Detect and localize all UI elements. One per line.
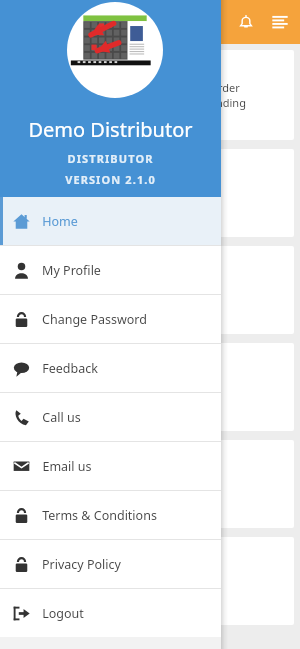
button[interactable]: Change Password xyxy=(0,295,221,343)
button[interactable]: Privacy Policy xyxy=(0,540,221,588)
button[interactable]: Menu xyxy=(265,7,295,37)
staticText: My Profile xyxy=(42,262,101,279)
button[interactable]: Logout xyxy=(0,589,221,637)
button[interactable]: Reports xyxy=(6,537,294,625)
button[interactable]: Payments xyxy=(6,149,294,237)
button[interactable]: Terms & Conditions xyxy=(0,491,221,539)
staticText: Home xyxy=(42,213,78,230)
staticText: Pending xyxy=(203,95,246,110)
staticText: Logout xyxy=(42,605,84,622)
staticText: DISTRIBUTOR xyxy=(67,151,154,166)
staticText: Change Password xyxy=(42,311,147,328)
button[interactable]: New xyxy=(6,246,294,334)
staticText: Email us xyxy=(42,458,92,475)
staticText: Terms & Conditions xyxy=(42,507,157,524)
staticText: Order xyxy=(209,80,240,95)
staticText: Call us xyxy=(42,409,81,426)
button[interactable]: Share xyxy=(195,7,225,37)
staticText: Demo Distributor xyxy=(28,116,193,143)
button[interactable]: Products xyxy=(6,440,294,528)
button[interactable]: My Profile xyxy=(0,246,221,294)
staticText: Orders xyxy=(59,80,95,95)
button[interactable]: Call us xyxy=(0,393,221,441)
staticText: Feedback xyxy=(42,360,98,377)
button[interactable]: Feedback xyxy=(0,344,221,392)
button[interactable]: Home xyxy=(0,197,221,245)
staticText: Privacy Policy xyxy=(42,556,121,573)
button[interactable]: Email us xyxy=(0,442,221,490)
button[interactable]: Profile picture xyxy=(67,2,163,98)
button[interactable]: Orders xyxy=(6,50,146,140)
staticText: Dispatched xyxy=(47,95,106,110)
button[interactable]: Notifications xyxy=(231,7,261,37)
button[interactable]: Order xyxy=(154,50,294,140)
staticText: VERSION 2.1.0 xyxy=(65,172,156,187)
button[interactable]: My orders xyxy=(6,343,294,431)
